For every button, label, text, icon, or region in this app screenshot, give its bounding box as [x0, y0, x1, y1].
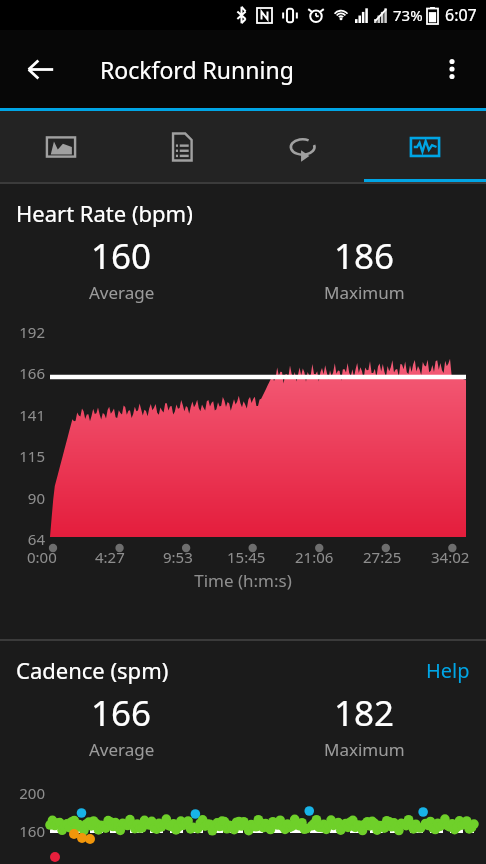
staticText: 0:00	[27, 547, 57, 567]
staticText: 186	[334, 232, 395, 280]
staticText: 200	[0, 783, 45, 803]
staticText: 166	[0, 363, 45, 383]
staticText: 160	[91, 232, 152, 280]
staticText: Average	[89, 281, 155, 304]
staticText: 4:27	[95, 547, 125, 567]
staticText: 9:53	[163, 547, 193, 567]
button[interactable]: Charts	[364, 111, 486, 182]
staticText: 27:25	[363, 547, 402, 567]
button[interactable]: Map	[0, 111, 121, 182]
staticText: 15:45	[227, 547, 266, 567]
staticText: 141	[0, 405, 45, 425]
staticText: 166	[91, 689, 152, 737]
staticText: 34:02	[431, 547, 470, 567]
staticText: 6:07	[445, 4, 477, 26]
staticText: 90	[0, 488, 45, 508]
staticText: Heart Rate (bpm)	[16, 198, 193, 228]
staticText: Cadence (spm)	[16, 655, 169, 685]
staticText: Rockford Running	[100, 54, 294, 85]
staticText: 64	[0, 529, 45, 549]
button[interactable]: More options	[428, 45, 476, 93]
staticText: Average	[89, 738, 155, 761]
staticText: 21:06	[295, 547, 334, 567]
button[interactable]: Help	[426, 657, 470, 684]
staticText: 192	[0, 322, 45, 342]
staticText: Help	[426, 657, 470, 684]
staticText: 182	[334, 689, 395, 737]
button[interactable]: Back	[14, 43, 66, 95]
staticText: Maximum	[324, 738, 405, 761]
staticText: 160	[0, 821, 45, 841]
button[interactable]: Laps	[242, 111, 364, 182]
staticText: 73%	[393, 5, 423, 25]
staticText: Maximum	[324, 281, 405, 304]
staticText: Time (h:m:s)	[0, 569, 486, 592]
button[interactable]: Details	[121, 111, 242, 182]
staticText: 115	[0, 446, 45, 466]
